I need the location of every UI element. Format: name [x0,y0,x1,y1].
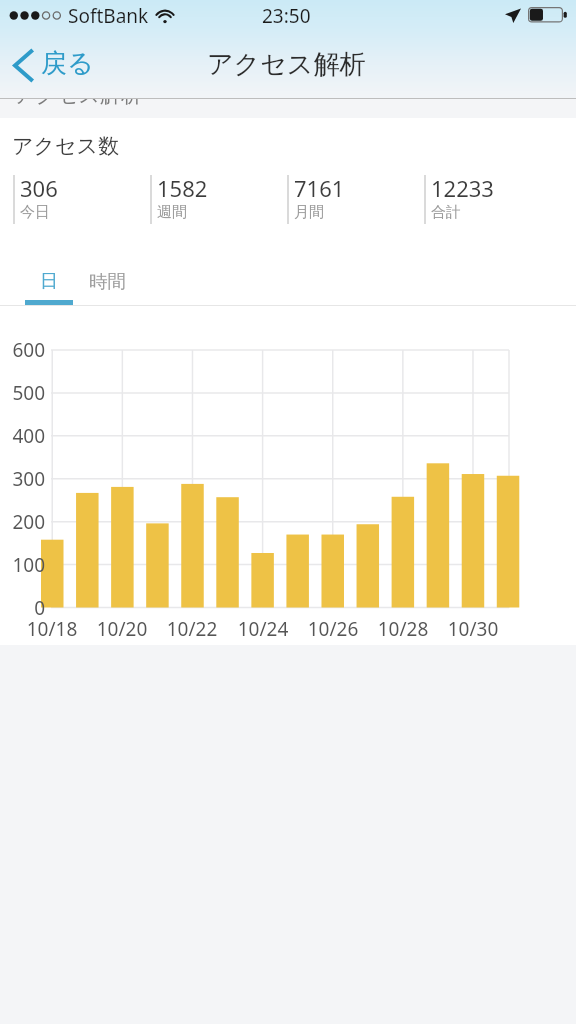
staticText: 日 [40,270,58,293]
button[interactable]: 時間 [73,262,141,305]
staticText: 合計 [431,203,461,222]
staticText: 今日 [20,203,50,222]
staticText: 10/30 [443,616,503,642]
staticText: 1582 [157,173,208,203]
button[interactable]: 戻る Back [0,42,110,86]
button[interactable]: 1582 [150,172,287,226]
staticText: 200 [1,509,45,535]
staticText: 10/20 [92,616,152,642]
staticText: 0 [1,595,45,621]
staticText: 12233 [431,173,494,203]
staticText: 23:50 [262,3,311,29]
button[interactable]: 306 [13,172,150,226]
staticText: 時間 [89,270,126,293]
button[interactable]: 12233 [424,172,561,226]
staticText: 7161 [294,173,345,203]
staticText: 10/22 [162,616,222,642]
staticText: 10/28 [373,616,433,642]
staticText: 600 [1,337,45,363]
staticText: 月間 [294,203,324,222]
staticText: アクセス解析 [14,99,142,105]
staticText: 306 [20,173,58,203]
staticText: アクセス解析 [207,48,366,81]
staticText: 戻る [41,47,94,80]
button[interactable]: 日 [25,262,73,305]
staticText: SoftBank [68,3,149,29]
staticText: アクセス数 [12,133,119,159]
staticText: 10/24 [233,616,293,642]
staticText: 週間 [157,203,187,222]
button[interactable]: 7161 [287,172,424,226]
staticText: 300 [1,466,45,492]
staticText: 100 [1,552,45,578]
staticText: 400 [1,423,45,449]
staticText: 500 [1,380,45,406]
staticText: 10/26 [303,616,363,642]
staticText: 10/18 [22,616,82,642]
